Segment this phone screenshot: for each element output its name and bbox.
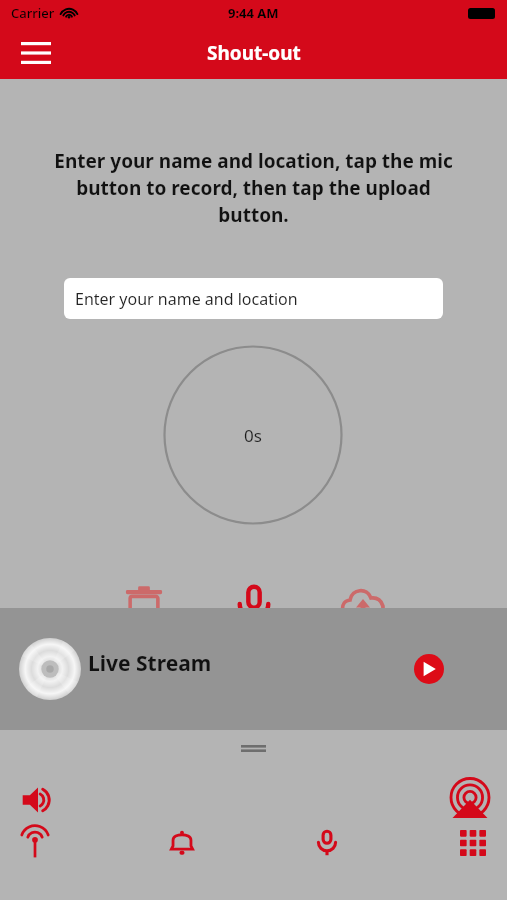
button[interactable]: Delete recording <box>113 575 175 637</box>
button[interactable]: Menu <box>10 27 62 79</box>
staticText: Enter your name and location <box>75 288 298 310</box>
staticText: 9:44 AM <box>228 4 279 22</box>
button[interactable]: Play <box>407 647 451 691</box>
button[interactable]: 0s <box>163 345 343 525</box>
staticText: Carrier <box>11 4 55 22</box>
button[interactable]: Volume <box>10 772 66 828</box>
button[interactable]: Upload <box>332 575 394 637</box>
button[interactable]: More <box>446 816 500 870</box>
staticText: 0s <box>244 424 262 447</box>
button[interactable]: Broadcast <box>8 816 62 870</box>
staticText: Shout-out <box>207 40 301 66</box>
button[interactable]: Alerts <box>155 816 209 870</box>
button[interactable]: Microphone <box>300 816 354 870</box>
button[interactable]: Record <box>223 575 285 637</box>
button[interactable]: Enter your name and location <box>64 278 443 319</box>
button[interactable]: AirPlay <box>441 770 499 828</box>
staticText: Live Stream <box>88 649 212 678</box>
staticText: Enter your name and location, tap the mi… <box>44 148 463 228</box>
